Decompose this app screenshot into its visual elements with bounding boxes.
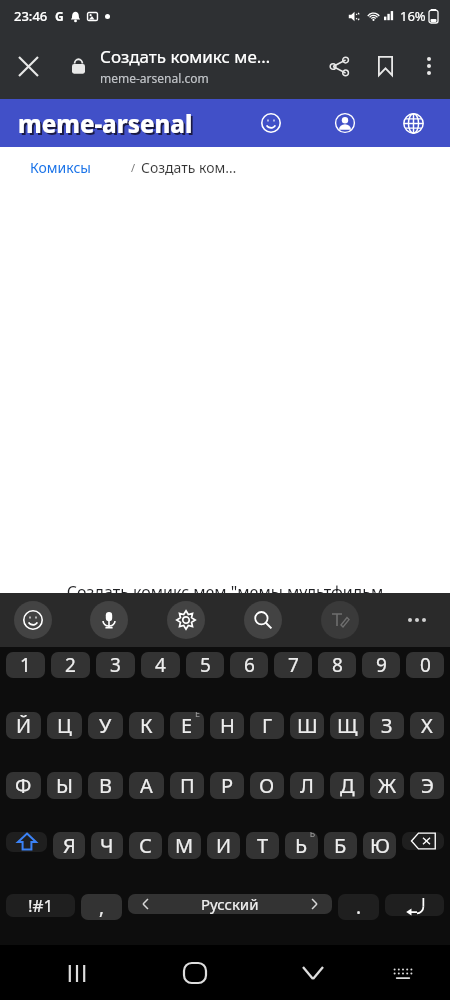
staticText: 5 bbox=[200, 652, 211, 678]
button[interactable]: Ф bbox=[6, 772, 41, 799]
staticText: Ч bbox=[100, 832, 114, 859]
button[interactable]: 1 bbox=[6, 652, 45, 678]
button[interactable]: К bbox=[129, 712, 164, 739]
staticText: Ю bbox=[370, 832, 390, 859]
staticText: Я bbox=[63, 832, 76, 859]
staticText: А bbox=[140, 772, 153, 799]
button[interactable]: 8 bbox=[318, 652, 356, 678]
button[interactable]: Д bbox=[330, 772, 364, 799]
button[interactable]: Я bbox=[53, 832, 85, 859]
button[interactable]: More options bbox=[408, 38, 450, 94]
button[interactable]: Emoji keyboard bbox=[14, 601, 52, 639]
button[interactable]: М bbox=[168, 832, 201, 859]
button[interactable]: Х bbox=[410, 712, 444, 739]
button[interactable]: 2 bbox=[51, 652, 90, 678]
button[interactable]: More bbox=[398, 601, 436, 639]
staticText: Г bbox=[262, 712, 273, 739]
staticText: У bbox=[99, 712, 112, 739]
button[interactable]: 7 bbox=[274, 652, 312, 678]
button[interactable]: О bbox=[250, 772, 284, 799]
button[interactable]: Home bbox=[171, 949, 219, 997]
staticText: Ц bbox=[57, 712, 72, 739]
staticText: 4 bbox=[155, 652, 166, 678]
button[interactable]: Русский bbox=[128, 894, 332, 914]
button[interactable]: Л bbox=[290, 772, 324, 799]
button[interactable]: Т bbox=[246, 832, 279, 859]
button[interactable]: Handwriting bbox=[321, 601, 359, 639]
staticText: 7 bbox=[288, 652, 299, 678]
button[interactable]: . bbox=[338, 894, 379, 920]
button[interactable]: С bbox=[129, 832, 162, 859]
button[interactable]: В bbox=[88, 772, 123, 799]
button[interactable]: 0 bbox=[406, 652, 444, 678]
button[interactable]: 9 bbox=[362, 652, 400, 678]
staticText: 6 bbox=[244, 652, 255, 678]
staticText: Д bbox=[340, 772, 355, 799]
button[interactable]: Р bbox=[210, 772, 244, 799]
staticText: Т bbox=[257, 832, 269, 859]
button[interactable]: Э bbox=[410, 772, 444, 799]
button[interactable]: 3 bbox=[96, 652, 135, 678]
button[interactable]: 5 bbox=[186, 652, 224, 678]
button[interactable]: Hide keyboard bbox=[289, 949, 337, 997]
button[interactable]: Ы bbox=[47, 772, 82, 799]
button[interactable]: Keyboard layout bbox=[379, 949, 427, 997]
staticText: Р bbox=[221, 772, 234, 799]
button[interactable]: Г bbox=[250, 712, 284, 739]
staticText: meme-arsenal bbox=[20, 109, 195, 142]
button[interactable]: Backspace bbox=[402, 832, 444, 850]
button[interactable]: Комиксы bbox=[30, 158, 91, 177]
staticText: Ь bbox=[295, 832, 308, 859]
staticText: 0 bbox=[420, 652, 431, 678]
button[interactable]: Account bbox=[322, 100, 368, 146]
button[interactable]: П bbox=[170, 772, 204, 799]
button[interactable]: Ч bbox=[91, 832, 123, 859]
staticText: Э bbox=[421, 772, 434, 799]
button[interactable]: Enter bbox=[385, 894, 444, 916]
staticText: Н bbox=[220, 712, 235, 739]
button[interactable]: meme-arsenal bbox=[18, 107, 193, 140]
button[interactable]: Recent apps bbox=[53, 949, 101, 997]
button[interactable]: Е bbox=[170, 712, 204, 739]
staticText: meme-arsenal bbox=[18, 107, 193, 140]
staticText: П bbox=[180, 772, 195, 799]
button[interactable]: Shift bbox=[6, 832, 47, 852]
staticText: 9 bbox=[376, 652, 387, 678]
staticText: / bbox=[131, 160, 136, 175]
button[interactable]: Search bbox=[244, 601, 282, 639]
button[interactable]: Ь bbox=[285, 832, 318, 859]
button[interactable]: Close bbox=[0, 38, 56, 94]
button[interactable]: Ж bbox=[370, 772, 404, 799]
button[interactable]: Share bbox=[316, 38, 362, 94]
button[interactable]: Б bbox=[324, 832, 357, 859]
button[interactable]: Ш bbox=[290, 712, 324, 739]
button[interactable]: Щ bbox=[330, 712, 364, 739]
button[interactable]: Ц bbox=[47, 712, 82, 739]
button[interactable]: Й bbox=[6, 712, 41, 739]
staticText: Ъ bbox=[309, 832, 316, 839]
button[interactable]: Создать комикс ме… bbox=[100, 45, 310, 86]
staticText: 8 bbox=[332, 652, 343, 678]
staticText: Создать комикс ме… bbox=[100, 45, 271, 68]
button[interactable]: 6 bbox=[230, 652, 268, 678]
button[interactable]: Voice input bbox=[90, 601, 128, 639]
button[interactable]: Emoji bbox=[248, 100, 294, 146]
staticText: К bbox=[140, 712, 153, 739]
button[interactable]: 4 bbox=[141, 652, 180, 678]
staticText: Ж bbox=[378, 772, 397, 799]
button[interactable]: Bookmark bbox=[362, 38, 408, 94]
staticText: Русский bbox=[201, 894, 259, 914]
button[interactable]: Settings bbox=[167, 601, 205, 639]
button[interactable]: Ю bbox=[363, 832, 396, 859]
staticText: З bbox=[381, 712, 393, 739]
button[interactable]: , bbox=[81, 894, 122, 920]
staticText: 16% bbox=[400, 7, 426, 25]
button[interactable]: !#1 bbox=[6, 894, 75, 917]
staticText: В bbox=[99, 772, 112, 799]
button[interactable]: А bbox=[129, 772, 164, 799]
button[interactable]: Н bbox=[210, 712, 244, 739]
button[interactable]: И bbox=[207, 832, 240, 859]
button[interactable]: У bbox=[88, 712, 123, 739]
button[interactable]: Language bbox=[390, 100, 436, 146]
button[interactable]: З bbox=[370, 712, 404, 739]
